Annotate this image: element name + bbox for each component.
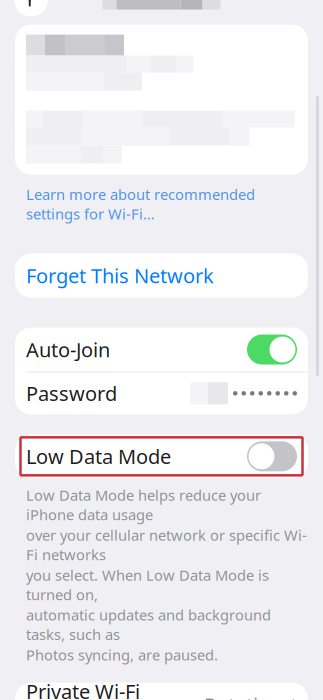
staticText: Low Data Mode: [26, 443, 171, 470]
staticText: over your cellular network or specific W…: [26, 525, 307, 564]
staticText: you select. When Low Data Mode is turned…: [26, 565, 269, 604]
button[interactable]: Auto-Join: [15, 327, 308, 371]
staticText: Low Data Mode helps reduce your iPhone d…: [26, 485, 261, 524]
button[interactable]: Learn more about recommended settings fo…: [15, 175, 308, 228]
staticText: Photos syncing, are paused.: [26, 645, 218, 665]
button[interactable]: Forget This Network: [15, 253, 308, 297]
staticText: Rotating: [204, 691, 282, 700]
staticText: Forget This Network: [26, 262, 214, 289]
button[interactable]: Back: [9, 0, 53, 22]
staticText: Password: [26, 380, 117, 407]
staticText: automatic updates and background tasks, …: [26, 605, 271, 644]
staticText: Auto-Join: [26, 336, 110, 363]
staticText: Private Wi-Fi Address: [26, 678, 140, 700]
button[interactable]: Private Wi-Fi Address: [15, 683, 308, 700]
button[interactable]: Password: [15, 372, 308, 414]
button[interactable]: Low Data Mode: [15, 434, 308, 478]
staticText: Learn more about recommended settings fo…: [26, 185, 255, 224]
